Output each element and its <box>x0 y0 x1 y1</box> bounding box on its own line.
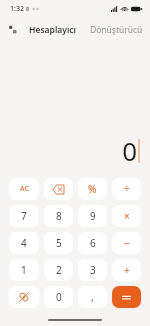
button[interactable]: Dönüştürücü <box>87 21 146 39</box>
button[interactable]: 2 <box>44 259 73 281</box>
staticText: Hesaplayıcı <box>29 24 76 36</box>
button[interactable]: 5 <box>44 232 73 254</box>
staticText: + <box>124 263 130 277</box>
staticText: × <box>124 209 130 223</box>
staticText: 5 <box>56 236 62 250</box>
staticText: 0 <box>56 290 62 304</box>
staticText: 1:32 <box>10 4 24 14</box>
button[interactable]: 0 <box>44 286 73 308</box>
button[interactable]: 6 <box>78 232 107 254</box>
button[interactable]: % <box>78 178 107 200</box>
button[interactable]: Units <box>4 21 22 39</box>
button[interactable]: Scientific <box>9 286 39 308</box>
button[interactable]: 7 <box>9 205 39 227</box>
button[interactable]: 8 <box>44 205 73 227</box>
staticText: 6 <box>90 236 96 250</box>
button[interactable]: + <box>112 259 141 281</box>
button[interactable]: , <box>78 286 107 308</box>
staticText: 1 <box>21 263 27 277</box>
staticText: − <box>124 236 130 250</box>
staticText: , <box>91 290 94 304</box>
button[interactable]: Hesaplayıcı <box>26 21 79 39</box>
button[interactable]: 4 <box>9 232 39 254</box>
staticText: AC <box>20 184 29 194</box>
button[interactable]: AC <box>9 178 39 200</box>
staticText: 2 <box>56 263 62 277</box>
button[interactable]: 9 <box>78 205 107 227</box>
button[interactable]: Backspace <box>44 178 73 200</box>
staticText: 8 <box>56 209 62 223</box>
staticText: Dönüştürücü <box>90 24 143 36</box>
staticText: 9 <box>90 209 96 223</box>
button[interactable]: 1 <box>9 259 39 281</box>
staticText: 7 <box>21 209 27 223</box>
button[interactable]: 3 <box>78 259 107 281</box>
staticText: 0 <box>122 133 137 168</box>
button[interactable] <box>112 286 141 308</box>
staticText: 4 <box>21 236 27 250</box>
staticText: % <box>88 182 97 196</box>
staticText: ÷ <box>124 182 130 196</box>
button[interactable]: ÷ <box>112 178 141 200</box>
button[interactable]: × <box>112 205 141 227</box>
button[interactable]: − <box>112 232 141 254</box>
staticText: 3 <box>90 263 96 277</box>
